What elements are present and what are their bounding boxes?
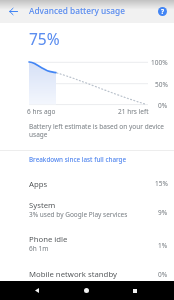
staticText: 3% used by Google Play services xyxy=(29,210,128,219)
button[interactable]: Back xyxy=(30,281,44,300)
staticText: 15% xyxy=(155,179,168,188)
staticText: Advanced battery usage xyxy=(29,5,125,16)
staticText: 50% xyxy=(155,80,168,89)
staticText: Mobile network standby xyxy=(29,269,117,280)
staticText: 9% xyxy=(158,208,168,217)
staticText: 100% xyxy=(151,58,168,67)
button[interactable]: Home xyxy=(79,281,93,300)
staticText: ? xyxy=(161,7,165,16)
staticText: 0% xyxy=(158,270,168,279)
button[interactable]: Recents xyxy=(128,281,142,300)
button[interactable]: Breakdown since last full charge xyxy=(0,152,174,165)
button[interactable]: Phone idle xyxy=(0,232,174,267)
button[interactable]: Help xyxy=(152,1,172,21)
staticText: 1% xyxy=(158,241,168,250)
staticText: 21 hrs left xyxy=(118,107,149,116)
staticText: 6h 1m xyxy=(29,244,49,253)
button[interactable]: System xyxy=(0,197,174,232)
button[interactable]: Mobile network standby xyxy=(0,267,174,294)
staticText: 75% xyxy=(29,28,60,49)
staticText: Breakdown since last full charge xyxy=(29,155,127,164)
staticText: 0% xyxy=(158,101,168,110)
staticText: Phone idle xyxy=(29,234,68,245)
staticText: 6 hrs ago xyxy=(27,107,56,116)
button[interactable]: Back xyxy=(3,1,23,21)
staticText: System xyxy=(29,200,56,211)
button[interactable]: Apps xyxy=(0,170,174,197)
staticText: Apps xyxy=(29,179,48,190)
staticText: Battery left estimate is based on your d… xyxy=(29,122,166,139)
